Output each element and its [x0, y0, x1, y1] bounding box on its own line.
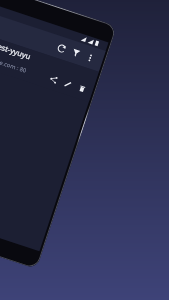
- button[interactable]: Edit: [58, 75, 77, 94]
- button[interactable]: Refresh: [52, 39, 71, 58]
- button[interactable]: Delete: [73, 79, 92, 98]
- button[interactable]: Filter: [66, 44, 85, 63]
- staticText: es-test-yyuyu: [0, 37, 33, 62]
- staticText: example.com : 80: [0, 52, 28, 75]
- button[interactable]: Share: [44, 70, 63, 89]
- button[interactable]: More options: [81, 48, 100, 67]
- button[interactable]: es-test-yyuyu: [0, 34, 99, 102]
